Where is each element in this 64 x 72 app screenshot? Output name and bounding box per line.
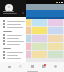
button[interactable]: Profile [52, 63, 58, 69]
button[interactable]: Library [29, 63, 35, 69]
button[interactable] [0, 64, 26, 67]
button[interactable] [0, 61, 26, 64]
button[interactable] [0, 36, 26, 39]
button[interactable] [1, 35, 15, 42]
button[interactable] [1, 51, 15, 58]
button[interactable] [0, 53, 26, 56]
button[interactable]: Switch account [22, 12, 24, 14]
button[interactable] [16, 27, 31, 34]
button[interactable]: Home [6, 63, 12, 69]
button[interactable] [16, 19, 31, 26]
button[interactable] [1, 27, 15, 34]
button[interactable] [0, 19, 26, 22]
button[interactable] [1, 43, 15, 50]
button[interactable] [0, 42, 26, 45]
button[interactable]: Notifications [41, 63, 47, 69]
button[interactable] [0, 33, 26, 36]
button[interactable]: Profile photo [5, 4, 13, 12]
button[interactable] [0, 50, 26, 53]
button[interactable] [1, 19, 15, 26]
button[interactable] [16, 43, 31, 50]
button[interactable] [0, 25, 26, 28]
button[interactable] [32, 27, 47, 34]
button[interactable] [0, 56, 26, 59]
button[interactable]: Search [17, 63, 23, 69]
button[interactable] [0, 39, 26, 42]
button[interactable] [16, 51, 31, 58]
button[interactable]: Profile photo [0, 0, 26, 17]
button[interactable] [0, 22, 26, 25]
button[interactable] [16, 35, 31, 42]
